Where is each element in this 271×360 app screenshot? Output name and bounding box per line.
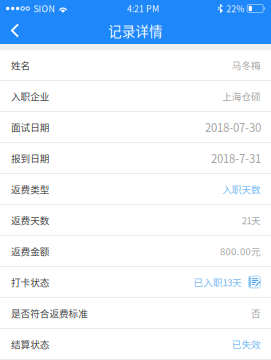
staticText: 返费类型 [11,182,50,196]
staticText: 记录详情 [108,21,163,40]
staticText: 打卡状态 [11,275,50,289]
staticText: 是否符合返费标准 [11,306,88,320]
staticText: 21天 [242,213,261,227]
staticText: 800.00元 [220,244,261,258]
staticText: 已失效 [232,337,261,351]
button[interactable]: Back [0,18,33,43]
staticText: SION [33,2,54,15]
staticText: 入职企业 [11,89,50,103]
staticText: 报到日期 [11,151,50,165]
staticText: 结算状态 [11,337,50,351]
staticText: 已入职13天 [193,275,242,289]
staticText: 上海仓硕 [222,89,261,103]
staticText: 否 [251,306,261,320]
staticText: 22% [226,2,244,15]
staticText: 面试日期 [11,120,50,134]
staticText: 姓名 [11,58,31,72]
staticText: 2018-07-30 [205,119,261,135]
staticText: 马冬梅 [232,58,261,72]
staticText: 2018-7-31 [211,150,261,166]
staticText: 入职天数 [222,182,261,196]
staticText: 返费金额 [11,244,50,258]
staticText: 返费天数 [11,213,50,227]
staticText: 4:21 PM [127,2,159,15]
